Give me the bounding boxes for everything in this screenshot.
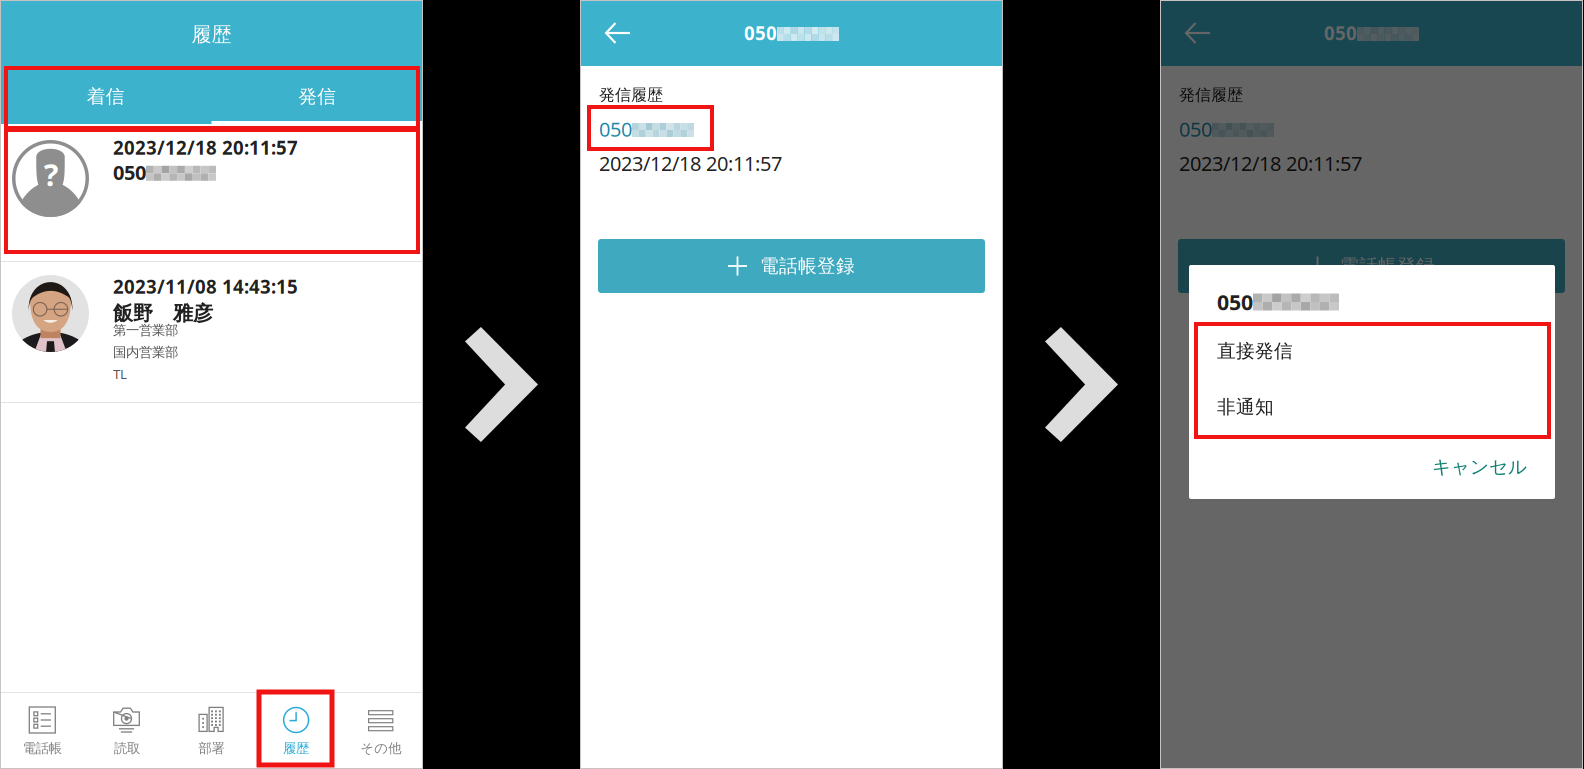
staticText: 部署 [198, 740, 224, 756]
button[interactable]: 着信 [0, 69, 211, 124]
button[interactable]: 電話帳登録 [598, 239, 985, 293]
button[interactable]: Back [1172, 7, 1224, 59]
staticText: 2023/12/18 20:11:57 [113, 135, 298, 160]
button[interactable]: 電話帳 [0, 693, 85, 769]
staticText: 2023/12/18 20:11:57 [1179, 150, 1362, 177]
staticText: 着信 [87, 85, 125, 108]
staticText: TL [113, 365, 127, 383]
button[interactable]: 発信 [211, 69, 423, 124]
staticText: ? [44, 154, 59, 195]
button[interactable]: 2023/11/08 14:43:15 [0, 262, 423, 402]
button[interactable]: 非通知 [1189, 379, 1555, 435]
staticText: 読取 [114, 740, 140, 756]
staticText: 050 [113, 159, 146, 186]
staticText: 発信履歴 [599, 85, 663, 105]
button[interactable]: Back [592, 7, 644, 59]
button[interactable]: キャンセル [1189, 446, 1555, 488]
staticText: 履歴 [283, 740, 309, 756]
button[interactable]: その他 [338, 693, 423, 769]
staticText: 電話帳 [23, 740, 62, 756]
button[interactable]: 読取 [85, 693, 169, 769]
staticText: キャンセル [1432, 455, 1527, 478]
staticText: 飯野 雅彦 [113, 301, 213, 326]
staticText: 2023/11/08 14:43:15 [113, 274, 298, 299]
staticText: 履歴 [191, 22, 231, 47]
staticText: 050 [1179, 116, 1212, 142]
button[interactable]: 電話帳登録 [1178, 239, 1565, 293]
staticText: 電話帳登録 [760, 254, 855, 277]
staticText: 050 [1324, 21, 1357, 45]
staticText: 第一営業部 [113, 322, 178, 338]
staticText: その他 [360, 740, 401, 756]
staticText: 発信 [298, 85, 336, 108]
button[interactable]: 050 [1179, 114, 1289, 144]
staticText: 050 [599, 116, 632, 142]
button[interactable]: 050 [599, 114, 709, 144]
staticText: 050 [744, 21, 777, 45]
staticText: 電話帳登録 [1340, 254, 1435, 277]
staticText: 国内営業部 [113, 344, 178, 360]
button[interactable]: ? [0, 128, 423, 261]
staticText: 直接発信 [1217, 339, 1293, 362]
staticText: 非通知 [1217, 395, 1274, 418]
staticText: 2023/12/18 20:11:57 [599, 150, 782, 177]
button[interactable]: 履歴 [254, 693, 338, 769]
staticText: 発信履歴 [1179, 85, 1243, 105]
staticText: 050 [1217, 288, 1253, 316]
button[interactable]: 部署 [169, 693, 254, 769]
button[interactable]: 直接発信 [1189, 323, 1555, 379]
